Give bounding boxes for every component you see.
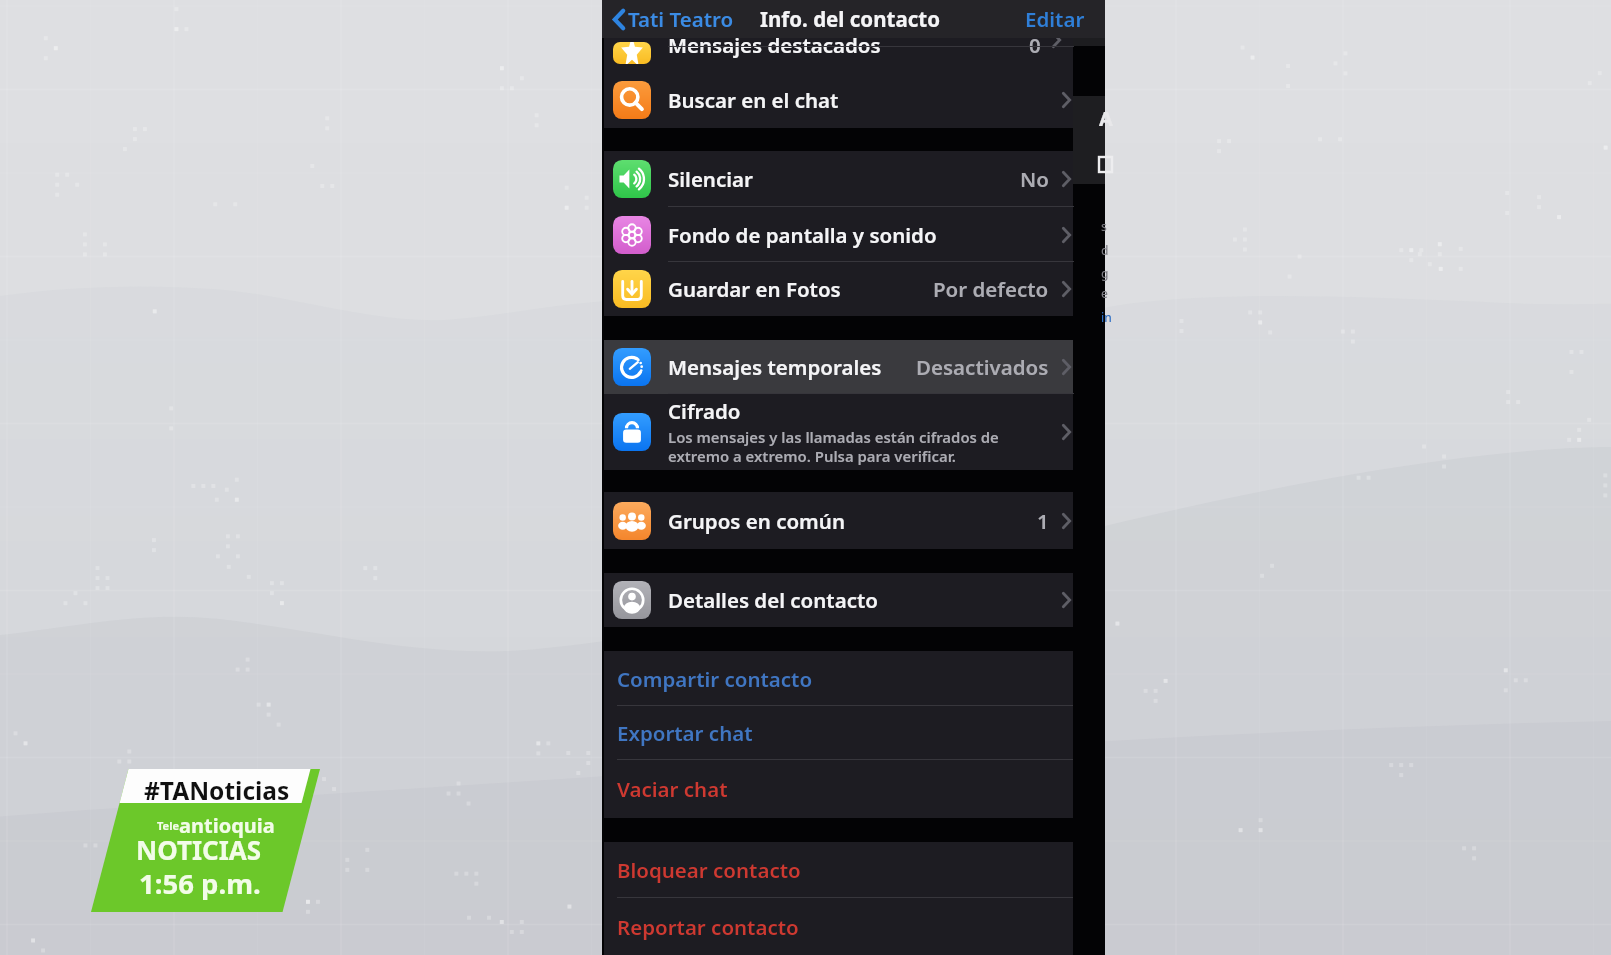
- staticText: 1:56 p.m.: [139, 865, 261, 902]
- staticText: Fondo de pantalla y sonido: [668, 221, 937, 249]
- staticText: No: [1020, 165, 1049, 193]
- staticText: Vaciar chat: [617, 775, 728, 803]
- button[interactable]: Vaciar chat: [604, 760, 1073, 818]
- staticText: in: [1101, 309, 1112, 325]
- button[interactable]: Back to Tati Teatro: [613, 5, 734, 33]
- staticText: d: [1101, 242, 1109, 258]
- staticText: g: [1101, 265, 1109, 281]
- staticText: Reportar contacto: [617, 913, 799, 941]
- staticText: Los mensajes y las llamadas están cifrad…: [668, 427, 999, 467]
- staticText: 0: [1029, 31, 1041, 59]
- button[interactable]: Grupos en común: [604, 492, 1073, 549]
- staticText: Mensajes destacados: [668, 31, 881, 59]
- button[interactable]: Exportar chat: [604, 706, 1073, 760]
- button[interactable]: Mensajes destacados: [604, 30, 1073, 72]
- staticText: Exportar chat: [617, 719, 753, 747]
- staticText: Cifrado: [668, 397, 741, 425]
- staticText: Editar: [1025, 5, 1085, 33]
- staticText: Tele: [157, 818, 179, 833]
- button[interactable]: Silenciar: [604, 151, 1073, 207]
- staticText: NOTICIAS: [136, 832, 262, 867]
- button[interactable]: Fondo de pantalla y sonido: [604, 207, 1073, 262]
- staticText: Grupos en común: [668, 507, 845, 535]
- staticText: Mensajes temporales: [668, 353, 882, 381]
- button[interactable]: Bloquear contacto: [604, 842, 1073, 898]
- staticText: Por defecto: [933, 275, 1049, 303]
- staticText: s: [1101, 218, 1107, 234]
- staticText: Tati Teatro: [628, 5, 734, 33]
- button[interactable]: Buscar en el chat: [604, 72, 1073, 128]
- staticText: Silenciar: [668, 165, 753, 193]
- button[interactable]: Guardar en Fotos: [604, 262, 1073, 316]
- staticText: Info. del contacto: [760, 5, 940, 33]
- staticText: Desactivados: [916, 353, 1049, 381]
- staticText: Detalles del contacto: [668, 586, 878, 614]
- button[interactable]: Detalles del contacto: [604, 573, 1073, 627]
- button[interactable]: Compartir contacto: [604, 651, 1073, 706]
- staticText: Compartir contacto: [617, 665, 813, 693]
- staticText: Guardar en Fotos: [668, 275, 841, 303]
- staticText: #TANoticias: [144, 774, 290, 807]
- button[interactable]: Cifrado: [604, 394, 1073, 470]
- button[interactable]: Mensajes temporales: [604, 340, 1073, 394]
- staticText: e: [1101, 285, 1108, 301]
- button[interactable]: Editar: [1025, 5, 1085, 33]
- button[interactable]: Reportar contacto: [604, 898, 1073, 955]
- staticText: Bloquear contacto: [617, 856, 801, 884]
- staticText: Buscar en el chat: [668, 86, 839, 114]
- staticText: antioquia: [179, 812, 275, 839]
- staticText: 1: [1037, 507, 1049, 535]
- staticText: A: [1099, 105, 1113, 132]
